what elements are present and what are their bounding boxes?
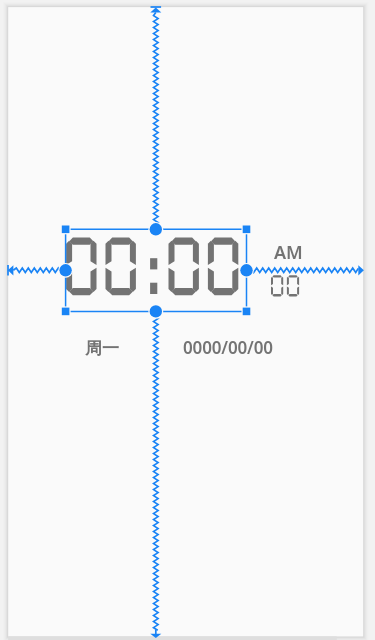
button[interactable]: Left margin constraint bbox=[6, 263, 62, 277]
button[interactable]: Right margin constraint bbox=[249, 263, 367, 277]
button[interactable]: 周一 bbox=[85, 338, 119, 359]
button[interactable]: 0000/00/00 bbox=[183, 336, 273, 359]
button[interactable]: Resize bottom bbox=[148, 303, 164, 319]
button[interactable]: Resize bottom right bbox=[241, 305, 253, 317]
button[interactable]: Resize top bbox=[148, 221, 164, 237]
button[interactable]: Resize top right bbox=[241, 223, 253, 235]
button[interactable]: Resize left bbox=[58, 262, 74, 278]
button[interactable]: Selected time element bbox=[66, 229, 247, 311]
button[interactable]: AM bbox=[274, 240, 303, 265]
button[interactable]: Resize right bbox=[239, 262, 255, 278]
button[interactable]: Bottom margin constraint bbox=[149, 313, 163, 632]
button[interactable]: Resize bottom left bbox=[60, 305, 72, 317]
button[interactable]: Top margin constraint bbox=[149, 6, 163, 223]
button[interactable]: Resize top left bbox=[60, 223, 72, 235]
